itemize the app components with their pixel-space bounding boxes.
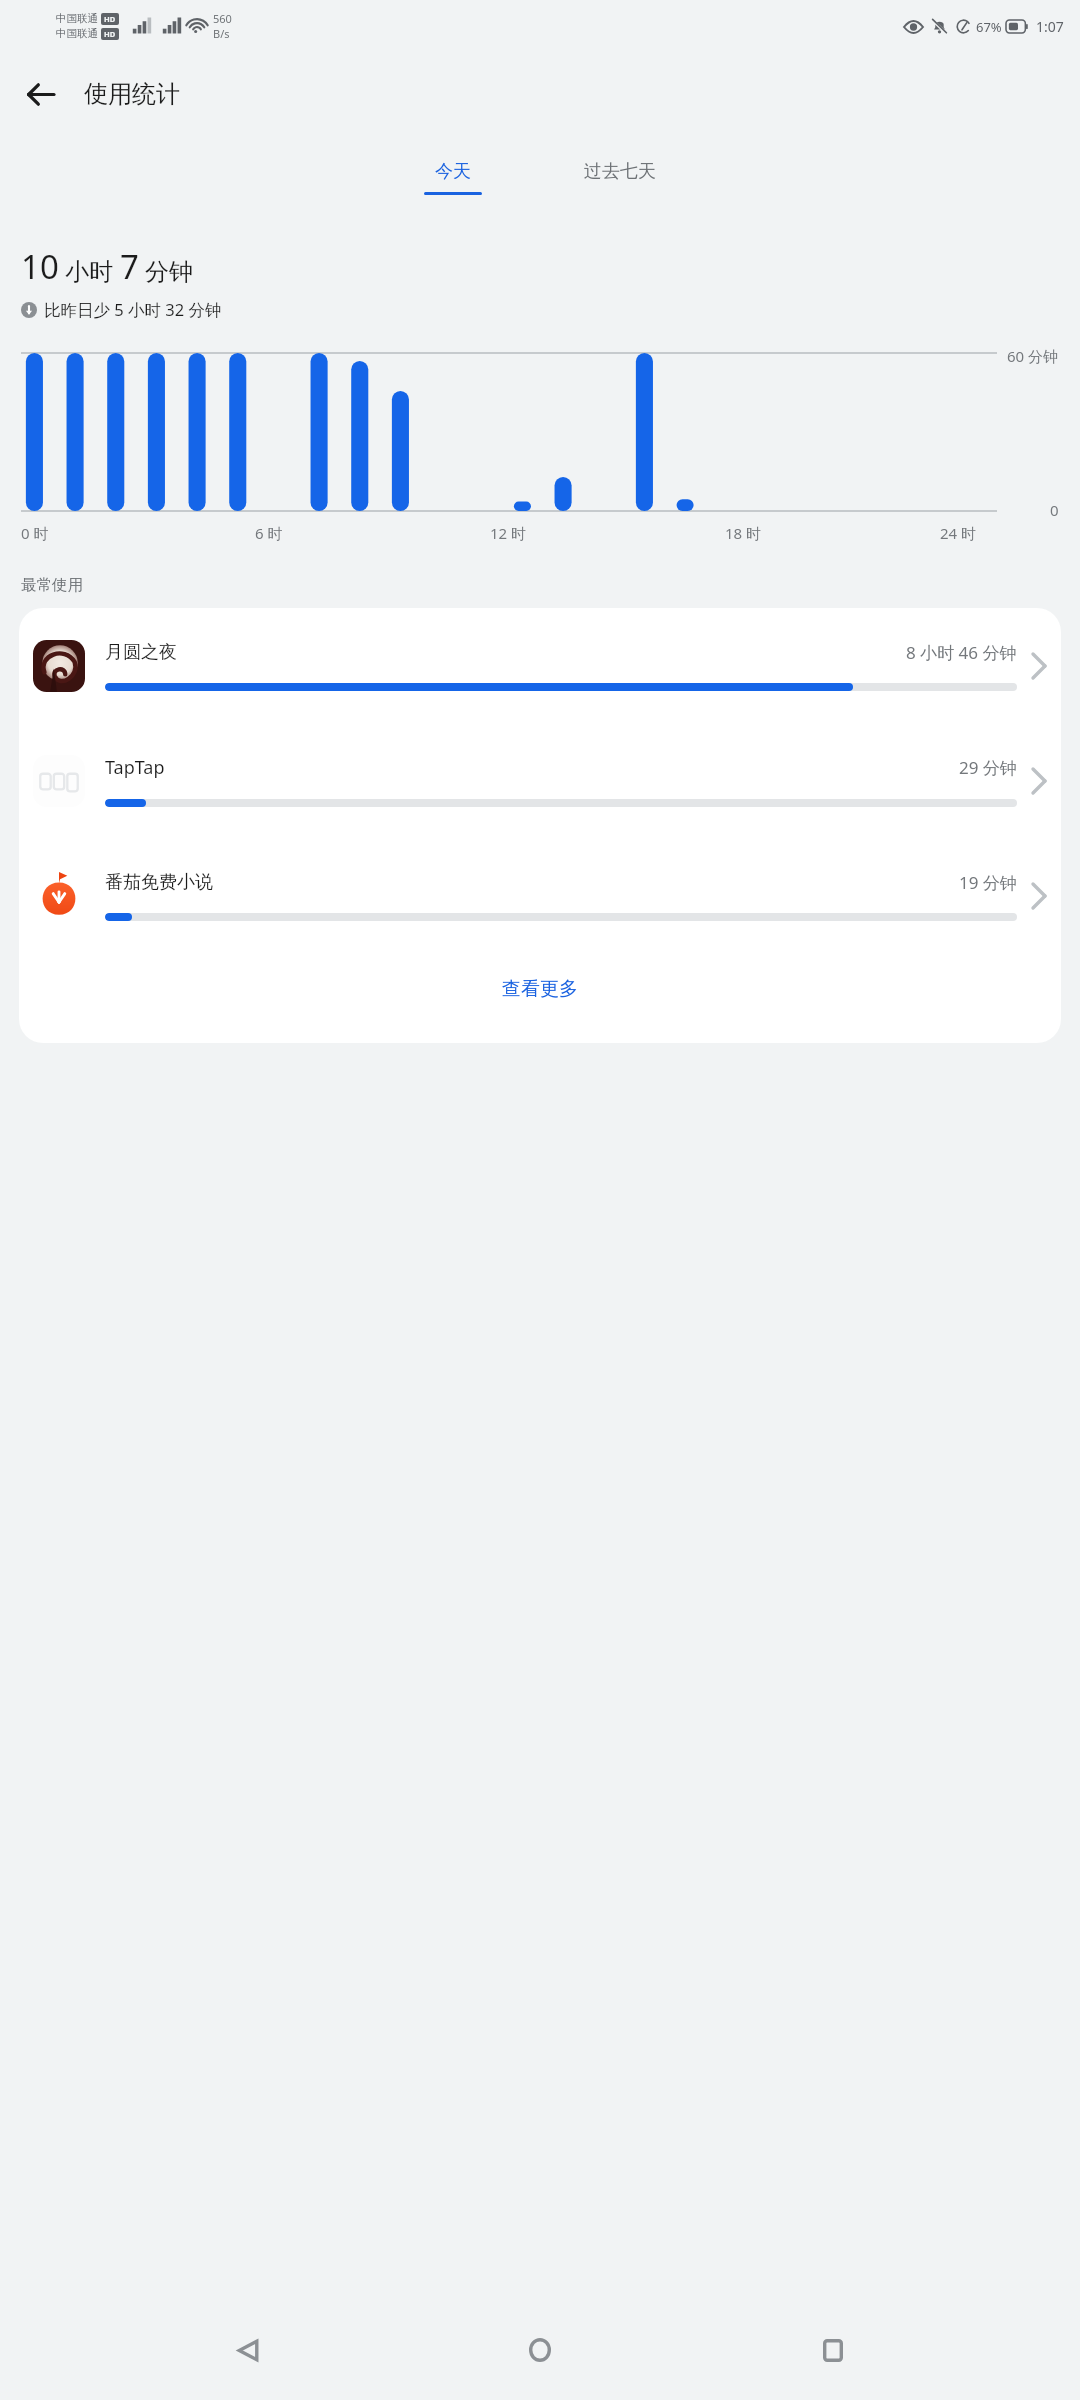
staticText: 29 分钟 [959,756,1017,779]
staticText: 10 [21,244,59,289]
staticText: 24 时 [940,523,977,543]
staticText: 18 时 [725,523,762,543]
button[interactable]: 番茄免费小说 [19,838,1061,953]
button[interactable]: 查看更多 [19,953,1061,1025]
staticText: 分钟 [145,257,193,287]
staticText: 0 [1050,500,1059,520]
staticText: 查看更多 [502,977,578,1001]
staticText: 1:07 [1036,17,1064,36]
staticText: 12 时 [490,523,527,543]
staticText: B/s [213,26,230,41]
staticText: 60 分钟 [1007,346,1059,366]
button[interactable]: Home [495,2305,585,2395]
staticText: TapTap [105,755,165,780]
staticText: 最常使用 [21,575,83,595]
staticText: 番茄免费小说 [105,871,213,894]
button[interactable]: Back [203,2305,293,2395]
staticText: 中国联通 [56,12,98,25]
staticText: 过去七天 [584,160,656,183]
staticText: 月圆之夜 [105,641,177,664]
button[interactable]: Back [12,66,68,122]
button[interactable]: Recents [788,2305,878,2395]
staticText: 8 小时 46 分钟 [906,641,1017,664]
staticText: 使用统计 [84,79,180,109]
staticText: HD [104,14,116,24]
staticText: 19 分钟 [959,871,1017,894]
staticText: 6 时 [255,523,283,543]
staticText: 比昨日少 5 小时 32 分钟 [44,298,222,321]
staticText: 中国联通 [56,27,98,40]
button[interactable]: 过去七天 [568,156,672,199]
staticText: HD [104,29,116,39]
staticText: 小时 [65,257,113,287]
staticText: 0 时 [21,523,49,543]
button[interactable]: 月圆之夜 [19,608,1061,723]
button[interactable]: TapTap [19,723,1061,838]
staticText: 560 [213,11,232,26]
staticText: 67% [976,18,1002,36]
button[interactable]: 今天 [408,156,498,199]
staticText: 7 [120,244,139,289]
staticText: 今天 [435,160,471,183]
